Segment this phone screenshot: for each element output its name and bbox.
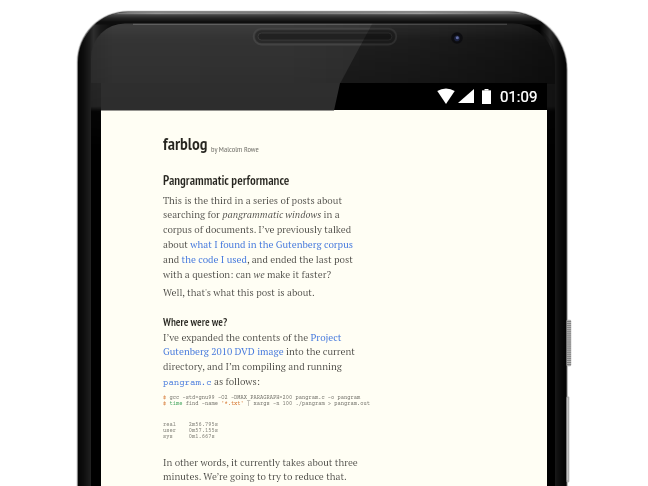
other: Mobile signal — [458, 89, 474, 103]
staticText: Where were we? — [163, 315, 228, 329]
button[interactable]: farblog — [163, 132, 259, 155]
staticText: I’ve expanded the contents of the Projec… — [163, 331, 357, 389]
other: Wi-Fi signal — [437, 89, 455, 104]
staticText: Well, that's what this post is about. — [163, 286, 315, 299]
staticText: In other words, it currently takes about… — [163, 456, 363, 483]
staticText: 01:09 — [500, 88, 538, 106]
staticText: user 0m57.155s — [163, 428, 218, 434]
staticText: sys 0m1.667s — [163, 434, 215, 440]
staticText: real 2m56.795s — [163, 422, 218, 428]
other: Battery full — [482, 89, 491, 104]
staticText: Pangrammatic performance — [163, 172, 290, 189]
staticText: $ time find -name '*.txt' | xargs -n 100… — [163, 401, 370, 407]
staticText: $ gcc -std=gnu99 -O2 -DMAX_PARAGRAPH=200… — [163, 395, 361, 401]
staticText: This is the third in a series of posts a… — [163, 194, 357, 281]
staticText: farblog — [163, 132, 208, 155]
staticText: by Malcolm Rowe — [211, 144, 259, 154]
